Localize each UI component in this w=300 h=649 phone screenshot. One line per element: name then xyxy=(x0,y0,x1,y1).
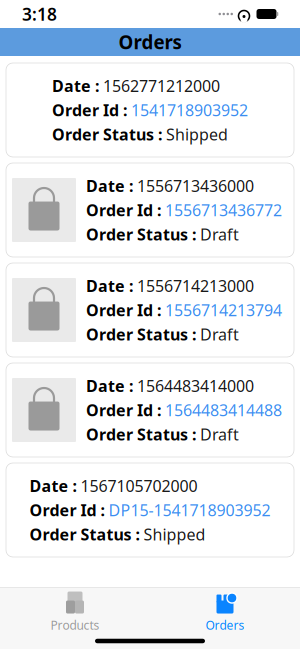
button[interactable]: Date : xyxy=(6,263,294,357)
button[interactable]: Orders xyxy=(150,588,300,633)
staticText: Order Id : xyxy=(86,199,165,221)
staticText: 3:18 xyxy=(22,2,57,25)
staticText: Order Id : xyxy=(52,99,131,121)
button[interactable]: Products xyxy=(0,588,150,633)
staticText: Products xyxy=(50,617,99,633)
staticText: Order Id : xyxy=(86,299,165,321)
staticText: Orders xyxy=(118,30,181,54)
staticText: 1541718903952 xyxy=(131,99,248,121)
staticText: Date : xyxy=(29,475,80,496)
staticText: 1564483414000 xyxy=(137,375,254,396)
staticText: Shipped xyxy=(143,524,205,545)
staticText: Draft xyxy=(200,424,239,445)
staticText: Date : xyxy=(86,275,137,296)
staticText: 1556713436000 xyxy=(137,175,254,196)
staticText: 1564483414488 xyxy=(165,399,282,421)
staticText: Date : xyxy=(86,375,137,396)
staticText: 1556714213794 xyxy=(165,299,282,321)
staticText: Orders xyxy=(205,617,244,633)
staticText: Shipped xyxy=(166,124,228,145)
staticText: 1562771212000 xyxy=(103,75,220,96)
staticText: Date : xyxy=(52,75,103,96)
button[interactable]: Date : xyxy=(6,363,294,457)
staticText: Order Id : xyxy=(86,399,165,421)
staticText: Date : xyxy=(86,175,137,196)
staticText: Order Status : xyxy=(86,224,200,245)
staticText: Order Status : xyxy=(86,324,200,345)
staticText: 1567105702000 xyxy=(80,475,197,496)
staticText: Draft xyxy=(200,324,239,345)
staticText: 1556714213000 xyxy=(137,275,254,296)
staticText: Order Status : xyxy=(86,424,200,445)
staticText: Order Status : xyxy=(29,524,143,545)
button[interactable]: Date : xyxy=(6,163,294,257)
staticText: DP15-1541718903952 xyxy=(108,499,270,521)
staticText: 1556713436772 xyxy=(165,199,282,221)
staticText: Draft xyxy=(200,224,239,245)
staticText: Order Status : xyxy=(52,124,166,145)
staticText: Order Id : xyxy=(29,499,108,521)
button[interactable]: Date : xyxy=(6,63,294,157)
button[interactable]: Date : xyxy=(6,463,294,557)
